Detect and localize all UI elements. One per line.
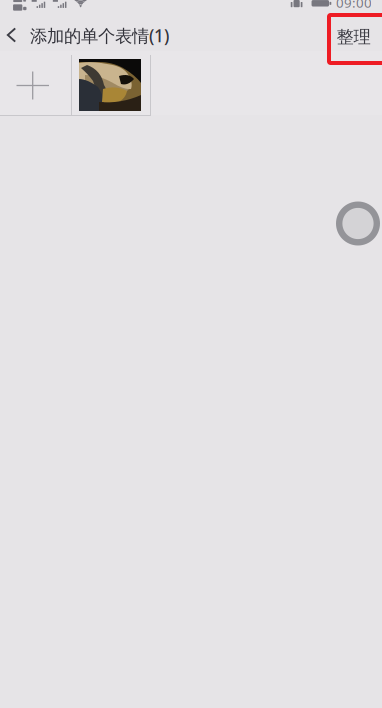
button[interactable]: 整理 [325,18,381,56]
staticText: 整理 [336,26,370,48]
button[interactable]: 添加表情 [0,51,71,115]
staticText: 09:00 [336,0,372,11]
button[interactable]: 返回 [0,16,26,54]
button[interactable]: 表情 [72,51,150,115]
staticText: 添加的单个表情(1) [30,24,169,47]
